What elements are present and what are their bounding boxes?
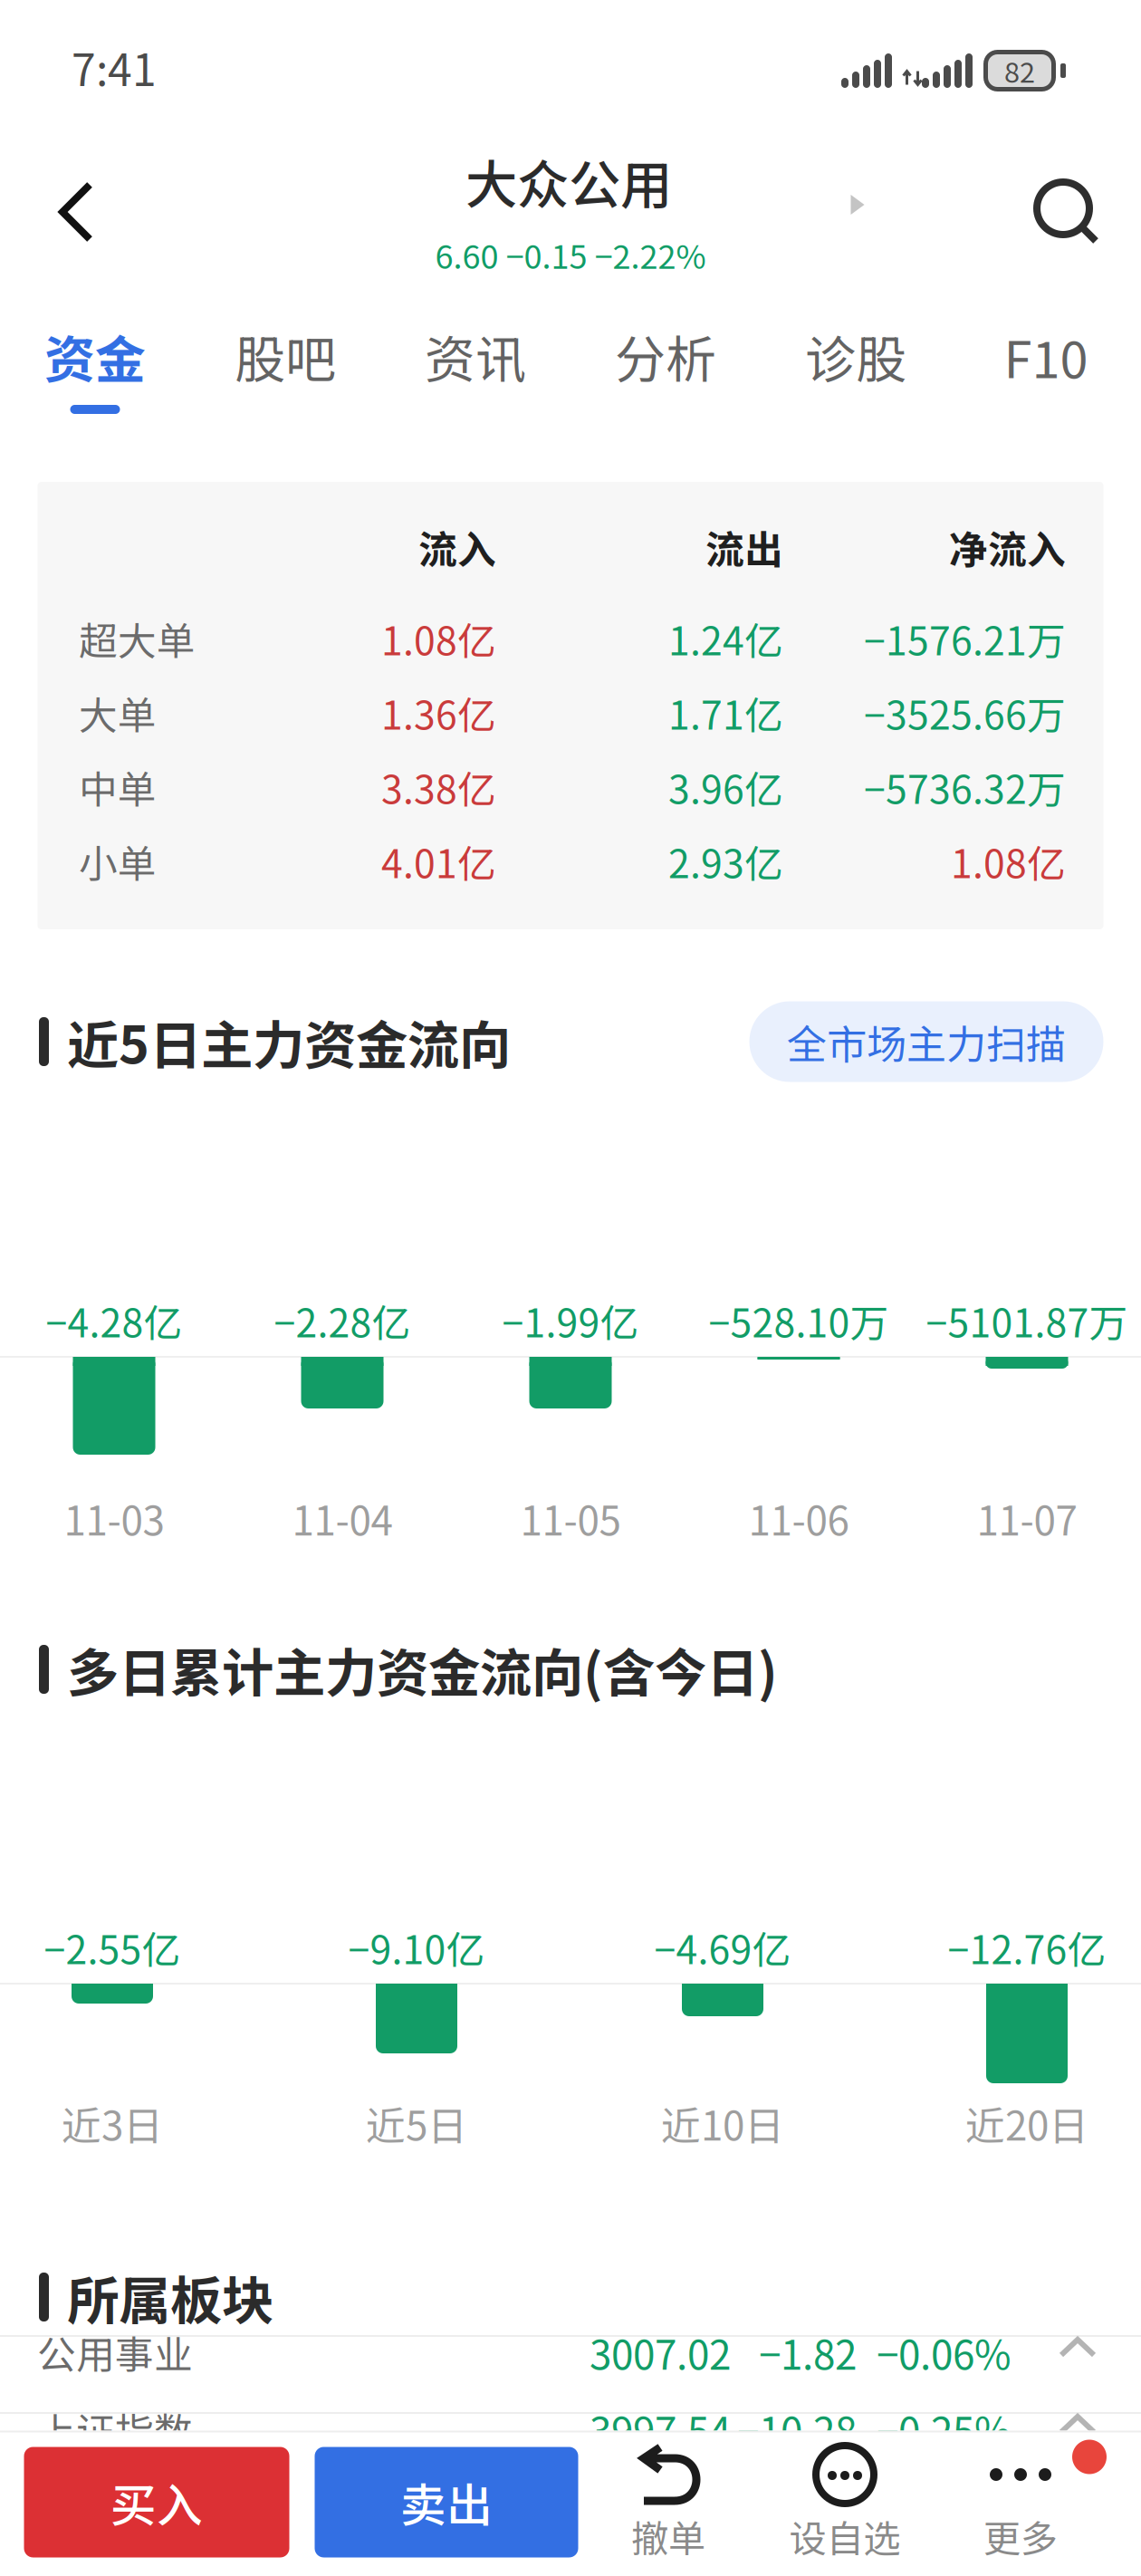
button[interactable]: 买入 (24, 2447, 289, 2557)
staticText: 1.08亿 (381, 611, 496, 667)
staticText: 资金 (44, 319, 146, 393)
staticText: 4.01亿 (381, 833, 496, 889)
staticText: 6.60 −0.15 −2.22% (435, 231, 706, 278)
button[interactable]: 设自选 (768, 2430, 922, 2576)
staticText: 3007.02 (590, 2323, 731, 2381)
staticText: 近3日 (62, 2094, 163, 2152)
staticText: 买入 (110, 2469, 203, 2535)
staticText: 11-07 (977, 1489, 1077, 1547)
staticText: 1.71亿 (668, 685, 783, 741)
button[interactable]: 卖出 (315, 2447, 578, 2557)
button[interactable]: 资金 (0, 297, 190, 424)
staticText: 小单 (79, 833, 157, 889)
staticText: −4.28亿 (46, 1293, 182, 1349)
staticText: 更多 (983, 2509, 1058, 2563)
staticText: 11-06 (748, 1489, 849, 1547)
button[interactable]: F10 (951, 297, 1141, 424)
staticText: −1.82 (759, 2323, 857, 2381)
staticText: 大单 (79, 685, 157, 741)
button[interactable]: Back (21, 149, 131, 274)
staticText: 中单 (79, 759, 157, 815)
staticText: 大众公用 (465, 144, 672, 219)
staticText: 近10日 (661, 2094, 784, 2152)
staticText: 撤单 (631, 2509, 705, 2563)
staticText: 流出 (705, 519, 783, 575)
staticText: F10 (1004, 319, 1088, 393)
staticText: 2.93亿 (668, 833, 783, 889)
staticText: 1.36亿 (381, 685, 496, 741)
staticText: −5101.87万 (926, 1293, 1128, 1349)
button[interactable]: 撤单 (591, 2430, 745, 2576)
staticText: 多日累计主力资金流向(含今日) (67, 1632, 778, 1707)
staticText: 11-05 (520, 1489, 621, 1547)
button[interactable]: 全市场主力扫描 (749, 1001, 1103, 1082)
staticText: 卖出 (400, 2469, 493, 2535)
button[interactable]: 更多 (944, 2430, 1098, 2576)
button[interactable]: Search (1012, 158, 1136, 283)
staticText: 11-04 (292, 1489, 393, 1547)
staticText: −2.28亿 (274, 1293, 411, 1349)
staticText: 1.08亿 (951, 833, 1066, 889)
staticText: 公用事业 (37, 2324, 193, 2380)
staticText: 3997.54 (590, 2400, 731, 2458)
staticText: 近5日主力资金流向 (67, 1004, 511, 1079)
staticText: 设自选 (789, 2509, 901, 2563)
staticText: −528.10万 (709, 1293, 889, 1349)
staticText: 上证指数 (37, 2401, 193, 2457)
staticText: 7:41 (72, 36, 157, 98)
staticText: 全市场主力扫描 (787, 1013, 1066, 1070)
staticText: 超大单 (79, 611, 196, 667)
staticText: −3525.66万 (864, 685, 1066, 741)
staticText: 资讯 (425, 319, 526, 393)
button[interactable]: 分析 (570, 297, 761, 424)
staticText: 3.38亿 (381, 759, 496, 815)
staticText: 11-03 (64, 1489, 164, 1547)
staticText: −5736.32万 (864, 759, 1066, 815)
button[interactable]: 资讯 (380, 297, 570, 424)
button[interactable]: 公用事业 (0, 2337, 1141, 2412)
staticText: 近5日 (366, 2094, 467, 2152)
staticText: 1.24亿 (668, 611, 783, 667)
staticText: 流入 (418, 519, 496, 575)
staticText: −2.55亿 (44, 1919, 181, 1975)
staticText: 股吧 (235, 319, 336, 393)
staticText: 近20日 (965, 2094, 1088, 2152)
staticText: −1.99亿 (502, 1293, 639, 1349)
button[interactable]: 股吧 (190, 297, 380, 424)
staticText: 净流入 (949, 519, 1066, 575)
staticText: 诊股 (805, 319, 906, 393)
staticText: −0.25% (877, 2400, 1012, 2458)
staticText: 所属板块 (67, 2259, 273, 2335)
staticText: −4.69亿 (654, 1919, 791, 1975)
staticText: −0.06% (877, 2323, 1012, 2381)
staticText: −1576.21万 (864, 611, 1066, 667)
staticText: 3.96亿 (668, 759, 783, 815)
staticText: 82 (1004, 51, 1035, 91)
staticText: −10.28 (737, 2400, 857, 2458)
button[interactable]: 诊股 (761, 297, 951, 424)
staticText: 分析 (615, 319, 716, 393)
staticText: −9.10亿 (348, 1919, 485, 1975)
staticText: −12.76亿 (948, 1919, 1106, 1975)
button[interactable]: 上证指数 (0, 2414, 1141, 2489)
